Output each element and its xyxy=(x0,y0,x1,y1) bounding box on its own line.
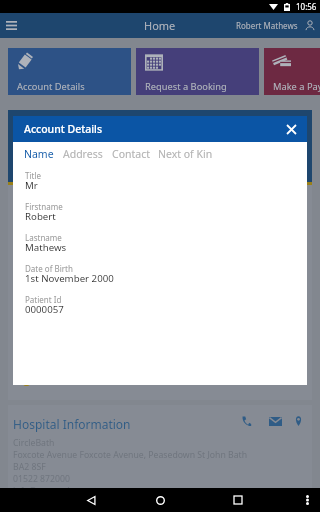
staticText: 1st November 2000 xyxy=(25,272,114,285)
staticText: 10:56 xyxy=(296,1,317,12)
staticText: 01522 872000 xyxy=(13,473,70,485)
staticText: Home xyxy=(144,18,176,33)
staticText: BA2 8SF xyxy=(13,461,46,473)
staticText: Account Details xyxy=(17,80,85,93)
staticText: Contact xyxy=(112,147,150,161)
staticText: 0000057 xyxy=(25,303,64,316)
staticText: Address xyxy=(63,147,103,161)
button[interactable]: Back xyxy=(82,491,100,509)
staticText: Firstname xyxy=(25,201,63,212)
staticText: Account Details xyxy=(24,122,103,136)
button[interactable]: Address xyxy=(63,147,103,161)
staticText: Mathews xyxy=(25,241,67,254)
staticText: Next of Kin xyxy=(158,147,213,161)
staticText: Date of Birth xyxy=(25,263,73,274)
staticText: Foxcote Avenue Foxcote Avenue, Peasedown… xyxy=(13,449,248,461)
staticText: Name xyxy=(24,147,54,161)
staticText: CircleBath xyxy=(13,437,55,449)
staticText: Make a Payment xyxy=(273,80,320,93)
staticText: info@streets-heaver.com xyxy=(13,485,114,497)
button[interactable]: More options xyxy=(300,493,314,507)
button[interactable]: Robert Mathews xyxy=(236,20,315,31)
staticText: Title xyxy=(25,170,41,181)
staticText: Lastname xyxy=(25,232,62,243)
staticText: Request a Booking xyxy=(145,80,227,93)
button[interactable]: Account Details xyxy=(8,48,131,95)
staticText: Robert Mathews xyxy=(236,20,298,31)
button[interactable]: Recent apps xyxy=(229,491,247,509)
button[interactable]: Contact xyxy=(112,147,150,161)
button[interactable]: Make a Payment xyxy=(264,48,320,95)
button[interactable]: Email hospital xyxy=(266,412,284,430)
button[interactable]: Close dialog xyxy=(282,120,300,138)
button[interactable]: Request a Booking xyxy=(136,48,259,95)
staticText: Patient Id xyxy=(25,294,62,305)
button[interactable]: Name xyxy=(24,147,54,161)
button[interactable]: Call hospital xyxy=(237,412,255,430)
staticText: Mr xyxy=(25,179,38,192)
staticText: Robert xyxy=(25,210,56,223)
button[interactable]: Hospital location xyxy=(289,412,307,430)
button[interactable]: Open navigation menu xyxy=(1,15,22,36)
button[interactable]: Home xyxy=(151,491,169,509)
staticText: Hospital Information xyxy=(13,416,131,432)
button[interactable]: Next of Kin xyxy=(158,147,213,161)
